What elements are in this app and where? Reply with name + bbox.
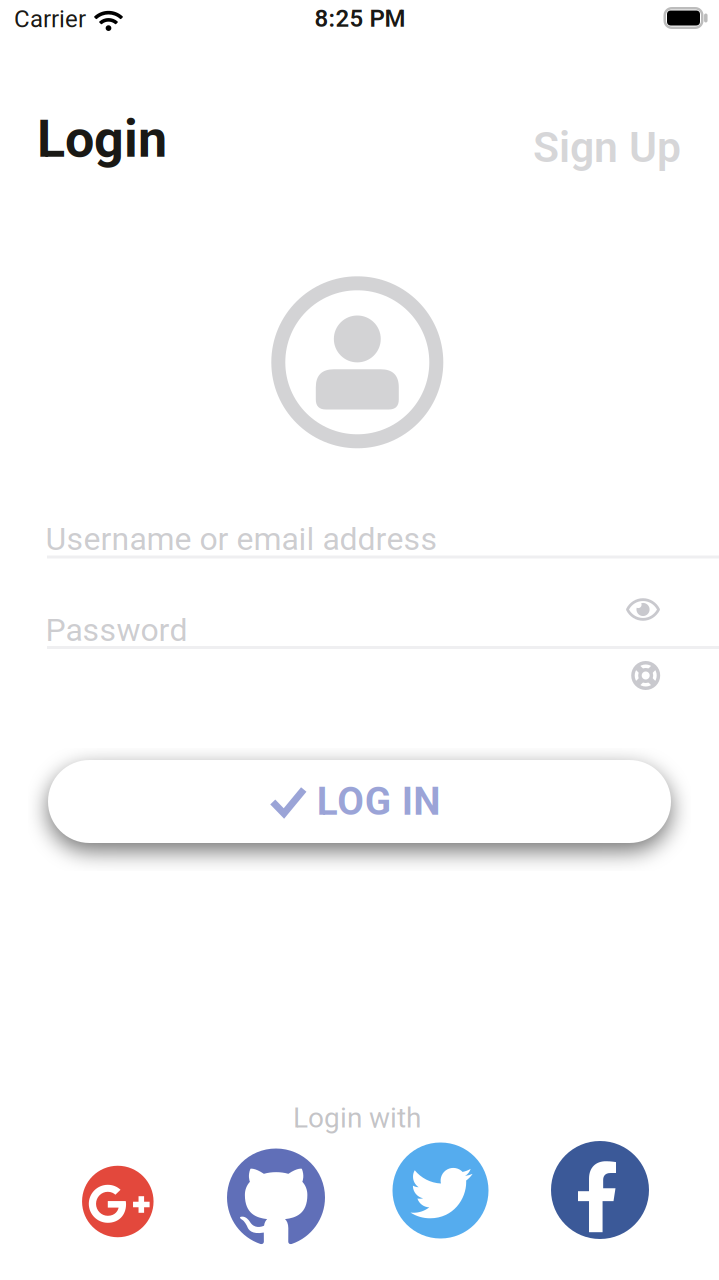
button[interactable]: Username or email address [45,510,719,568]
staticText: Carrier [14,5,86,33]
button[interactable]: Login with Twitter [392,1142,488,1238]
button[interactable]: LOG IN [48,760,671,843]
button[interactable]: Help [631,660,661,690]
staticText: Login with [293,1102,421,1134]
staticText: Sign Up [533,123,681,172]
button[interactable]: Sign Up [533,123,681,172]
staticText: 8:25 PM [314,5,405,32]
staticText: Password [45,612,187,648]
button[interactable]: Login with Facebook [551,1141,649,1239]
button[interactable]: Login with GitHub [227,1147,325,1245]
button[interactable]: Password [45,601,719,659]
staticText: Username or email address [45,521,437,557]
button[interactable]: Show password [626,597,660,621]
button[interactable]: Login with Google [82,1166,153,1237]
staticText: LOG IN [317,779,440,824]
staticText: Login [37,109,167,169]
